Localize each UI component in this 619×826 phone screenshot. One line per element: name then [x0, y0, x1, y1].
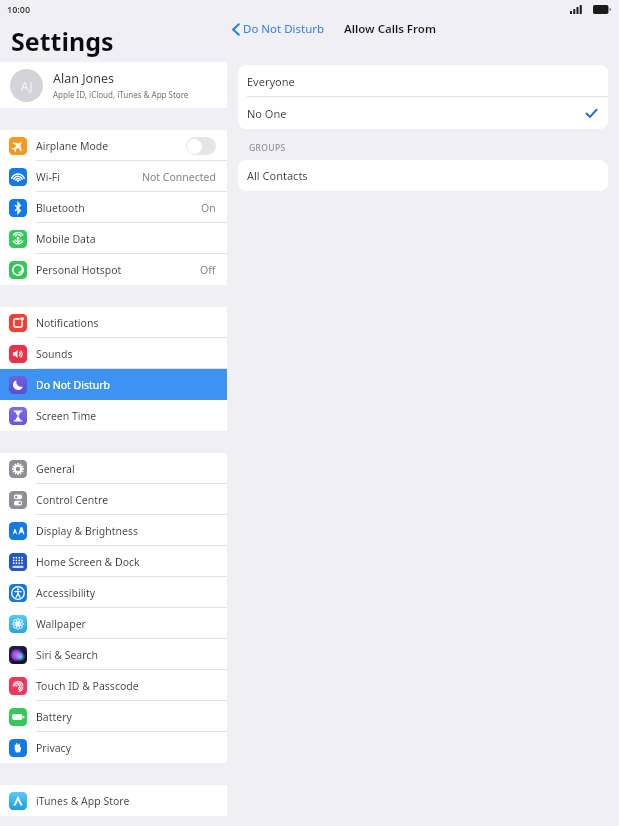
staticText: Siri & Search	[36, 648, 98, 662]
button[interactable]: Control Centre	[0, 484, 227, 515]
staticText: Do Not Disturb	[36, 378, 111, 392]
button[interactable]: Home Screen & Dock	[0, 546, 227, 577]
button[interactable]: Wi-Fi	[0, 161, 227, 192]
staticText: Alan Jones	[53, 70, 114, 87]
button[interactable]: Touch ID & Passcode	[0, 670, 227, 701]
button[interactable]: Accessibility	[0, 577, 227, 608]
button[interactable]: No One	[238, 97, 608, 129]
staticText: Wallpaper	[36, 617, 86, 631]
staticText: On	[201, 201, 216, 215]
staticText: Airplane Mode	[36, 139, 109, 153]
button[interactable]: Airplane Mode	[0, 130, 227, 161]
staticText: Personal Hotspot	[36, 263, 122, 277]
staticText: Allow Calls From	[344, 21, 436, 37]
button[interactable]: All Contacts	[238, 160, 608, 191]
button[interactable]: General	[0, 453, 227, 484]
staticText: Notifications	[36, 316, 99, 330]
staticText: Everyone	[247, 74, 295, 89]
button[interactable]: Everyone	[238, 65, 608, 97]
staticText: Screen Time	[36, 409, 97, 423]
button[interactable]: Privacy	[0, 732, 227, 763]
staticText: Do Not Disturb	[243, 21, 325, 37]
staticText: Bluetooth	[36, 201, 85, 215]
staticText: GROUPS	[249, 142, 286, 154]
button[interactable]: Battery	[0, 701, 227, 732]
staticText: Display & Brightness	[36, 524, 139, 538]
button[interactable]: Mobile Data	[0, 223, 227, 254]
button[interactable]: AJ	[0, 62, 227, 108]
staticText: Wi-Fi	[36, 170, 61, 184]
staticText: Touch ID & Passcode	[36, 679, 139, 693]
button[interactable]: Wallpaper	[0, 608, 227, 639]
button[interactable]: Screen Time	[0, 400, 227, 431]
staticText: Settings	[11, 24, 114, 58]
button[interactable]: Notifications	[0, 307, 227, 338]
button[interactable]: iTunes & App Store	[0, 785, 227, 816]
staticText: 10:00	[7, 3, 31, 15]
staticText: All Contacts	[247, 168, 308, 183]
button[interactable]: Do Not Disturb	[0, 369, 227, 400]
staticText: AJ	[21, 78, 33, 94]
staticText: Not Connected	[142, 170, 216, 184]
staticText: Off	[200, 263, 216, 277]
button[interactable]: Do Not Disturb	[232, 21, 325, 37]
button[interactable]: Airplane Mode toggle	[186, 137, 216, 155]
staticText: iTunes & App Store	[36, 794, 130, 808]
staticText: Apple ID, iCloud, iTunes & App Store	[53, 89, 189, 100]
staticText: Battery	[36, 710, 72, 724]
staticText: Control Centre	[36, 493, 109, 507]
button[interactable]: Siri & Search	[0, 639, 227, 670]
staticText: Mobile Data	[36, 232, 96, 246]
staticText: Sounds	[36, 347, 73, 361]
staticText: Accessibility	[36, 586, 96, 600]
staticText: General	[36, 462, 75, 476]
staticText: Home Screen & Dock	[36, 555, 140, 569]
staticText: No One	[247, 106, 287, 121]
staticText: Privacy	[36, 741, 72, 755]
button[interactable]: Display & Brightness	[0, 515, 227, 546]
button[interactable]: Personal Hotspot	[0, 254, 227, 285]
button[interactable]: Bluetooth	[0, 192, 227, 223]
button[interactable]: Sounds	[0, 338, 227, 369]
